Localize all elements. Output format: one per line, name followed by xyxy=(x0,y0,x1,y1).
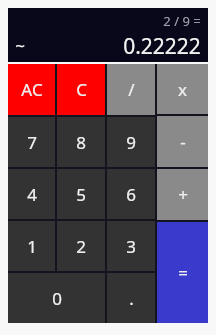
staticText: 4 xyxy=(27,183,37,206)
button[interactable]: - xyxy=(157,116,208,167)
staticText: 5 xyxy=(76,183,86,206)
staticText: 2 / 9 = xyxy=(163,12,201,30)
button[interactable]: 6 xyxy=(107,169,155,219)
staticText: 3 xyxy=(126,235,136,258)
button[interactable]: 1 xyxy=(8,221,55,271)
staticText: 6 xyxy=(126,183,136,206)
staticText: ~ xyxy=(15,34,25,57)
staticText: AC xyxy=(21,78,43,101)
staticText: 2 xyxy=(76,235,86,258)
staticText: 0.22222 xyxy=(123,32,201,58)
staticText: x xyxy=(178,78,187,101)
staticText: - xyxy=(180,130,186,153)
button[interactable]: / xyxy=(107,64,155,115)
staticText: . xyxy=(129,287,134,310)
staticText: C xyxy=(76,78,87,101)
staticText: 8 xyxy=(76,131,86,154)
button[interactable]: . xyxy=(107,273,155,323)
staticText: 9 xyxy=(126,131,136,154)
button[interactable]: 3 xyxy=(107,221,155,271)
button[interactable]: + xyxy=(157,169,208,220)
staticText: / xyxy=(128,78,135,101)
button[interactable]: x xyxy=(157,64,208,114)
button[interactable]: 0 xyxy=(8,273,105,323)
staticText: + xyxy=(178,183,188,206)
button[interactable]: 8 xyxy=(57,117,105,167)
button[interactable]: 4 xyxy=(8,169,55,219)
button[interactable]: 2 xyxy=(57,221,105,271)
staticText: = xyxy=(178,261,188,284)
button[interactable]: C xyxy=(57,64,105,115)
button[interactable]: 7 xyxy=(8,117,55,167)
button[interactable]: AC xyxy=(8,64,55,115)
staticText: 7 xyxy=(27,131,37,154)
staticText: 0 xyxy=(52,287,62,310)
button[interactable]: 9 xyxy=(107,117,155,167)
button[interactable]: 5 xyxy=(57,169,105,219)
button[interactable]: = xyxy=(157,222,208,323)
staticText: 1 xyxy=(27,235,37,258)
